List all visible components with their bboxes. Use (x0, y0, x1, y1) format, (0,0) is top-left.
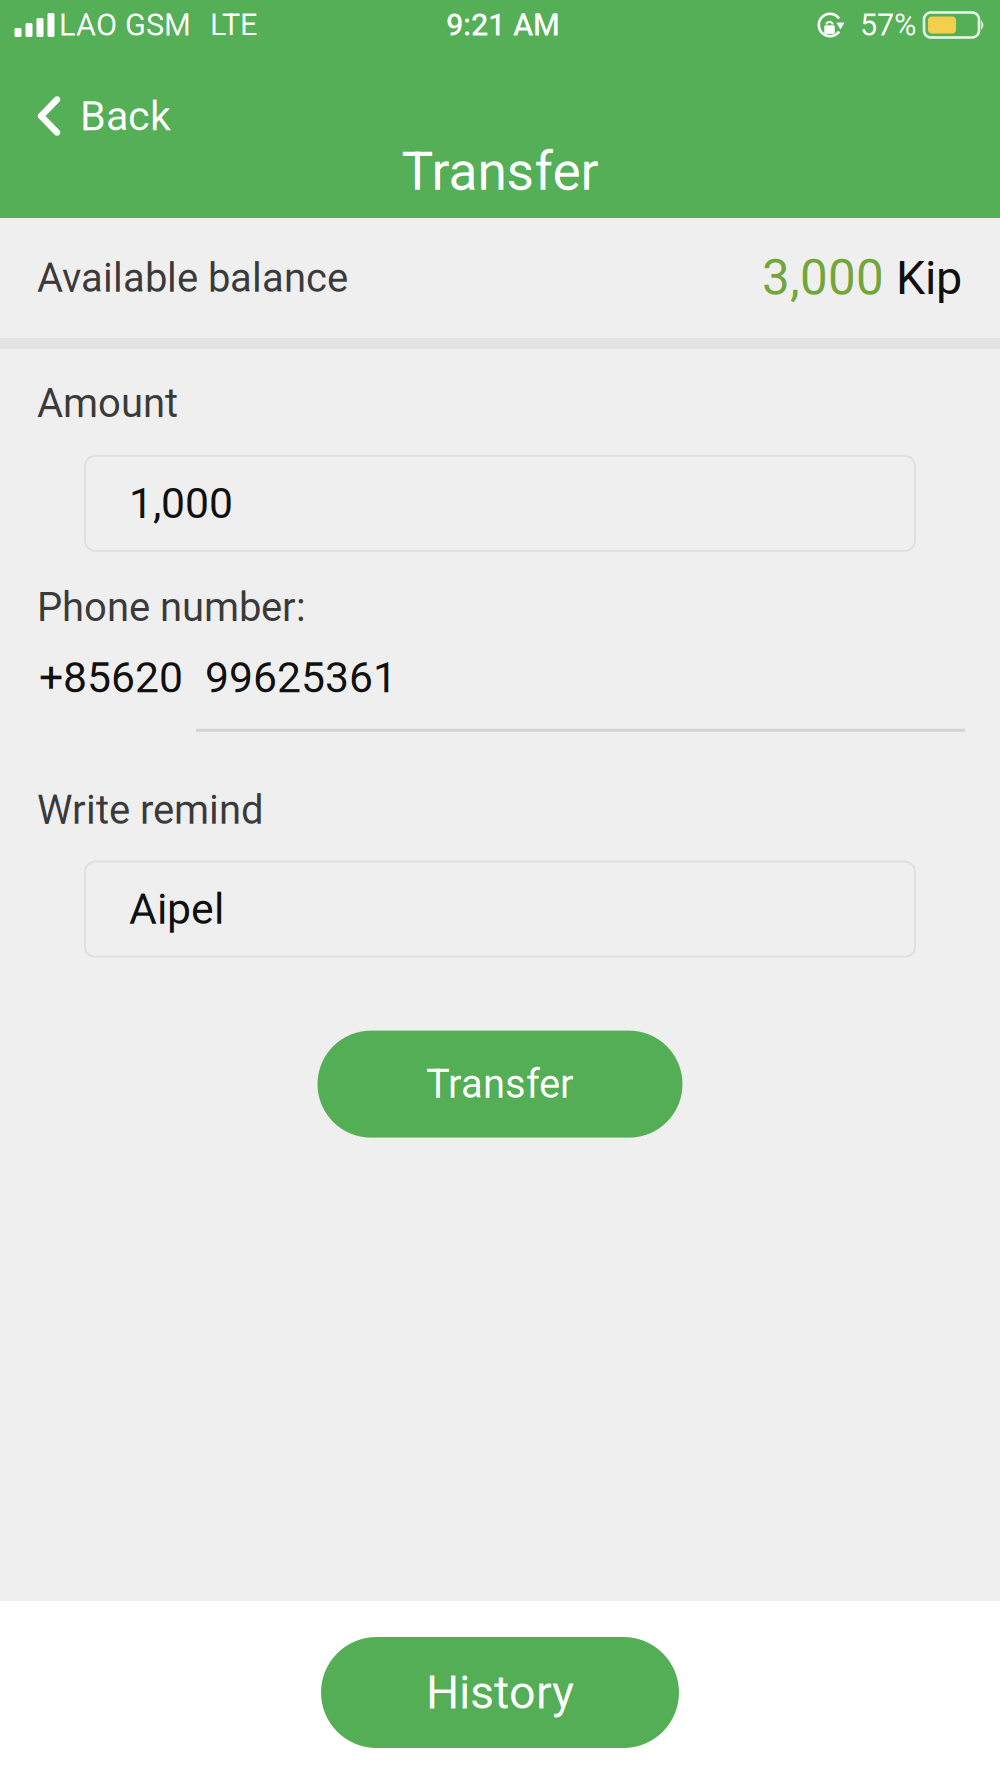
staticText: LAO GSM (59, 7, 191, 43)
staticText: Back (80, 92, 171, 140)
staticText: Write remind (37, 787, 264, 834)
staticText: Phone number: (37, 584, 306, 631)
button[interactable]: Transfer (317, 1031, 682, 1138)
staticText: Amount (37, 380, 178, 427)
button[interactable]: Back (0, 76, 230, 156)
staticText: 57% (860, 7, 916, 43)
staticText: Transfer (426, 1061, 574, 1108)
staticText: 9:21 AM (446, 7, 560, 43)
staticText: +85620 99625361 (39, 653, 397, 703)
button[interactable]: History (321, 1637, 679, 1748)
staticText: Aipel (129, 884, 224, 934)
staticText: 1,000 (129, 478, 233, 528)
staticText: Available balance (37, 255, 348, 301)
staticText: 3,000 (762, 249, 884, 307)
staticText: Transfer (401, 140, 598, 203)
staticText: LTE (210, 7, 257, 43)
staticText: History (426, 1665, 574, 1720)
staticText: Kip (884, 251, 962, 305)
